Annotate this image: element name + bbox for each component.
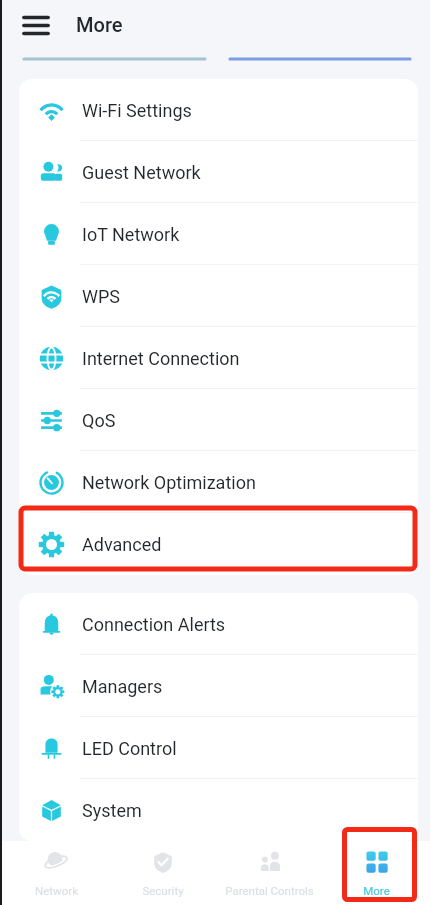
staticText: QoS (82, 410, 116, 431)
staticText: Wi-Fi Settings (82, 100, 192, 121)
button[interactable]: Guest Network (19, 141, 418, 203)
staticText: Security (142, 884, 184, 897)
staticText: Guest Network (82, 162, 201, 183)
staticText: Parental Controls (225, 884, 314, 897)
staticText: IoT Network (82, 224, 180, 245)
button[interactable]: Wi-Fi Settings (19, 79, 418, 141)
button[interactable]: QoS (19, 389, 418, 451)
staticText: Managers (82, 676, 163, 697)
button[interactable]: Connection Alerts (19, 593, 418, 655)
staticText: LED Control (82, 738, 177, 759)
button[interactable]: LED Control (19, 717, 418, 779)
button[interactable]: Open navigation menu (18, 7, 54, 43)
staticText: WPS (82, 286, 121, 307)
button[interactable]: Security (109, 841, 216, 905)
staticText: Connection Alerts (82, 614, 226, 635)
staticText: More (76, 13, 123, 36)
staticText: Network Optimization (82, 472, 256, 493)
button[interactable]: Network Optimization (19, 451, 418, 513)
button[interactable]: System (19, 779, 418, 841)
button[interactable]: Internet Connection (19, 327, 418, 389)
staticText: Internet Connection (82, 348, 240, 369)
button[interactable]: IoT Network (19, 203, 418, 265)
button[interactable]: Parental Controls (216, 841, 323, 905)
button[interactable]: Network (3, 841, 109, 905)
button[interactable]: Advanced (19, 513, 418, 575)
staticText: System (82, 800, 142, 821)
staticText: Network (35, 884, 78, 897)
button[interactable]: WPS (19, 265, 418, 327)
button[interactable]: More (323, 841, 430, 905)
button[interactable]: Managers (19, 655, 418, 717)
staticText: More (363, 884, 390, 897)
staticText: Advanced (82, 534, 162, 555)
